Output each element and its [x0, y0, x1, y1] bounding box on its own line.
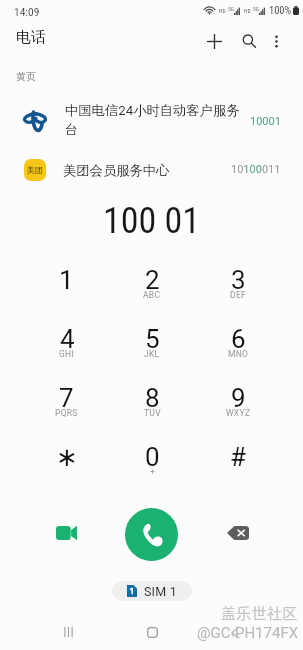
staticText: GHI	[59, 349, 75, 359]
staticText: 3	[231, 265, 246, 295]
staticText: 美团会员服务中心	[63, 162, 303, 179]
staticText: 黄页	[16, 70, 36, 83]
staticText: 100%	[269, 4, 292, 16]
staticText: DEF	[230, 290, 247, 300]
button[interactable]: Back	[219, 619, 251, 645]
staticText: JKL	[144, 349, 160, 359]
staticText: 盖乐世社区	[221, 602, 298, 624]
button[interactable]: 2	[109, 265, 195, 324]
staticText: 美团	[27, 165, 43, 175]
button[interactable]: 5	[109, 324, 195, 383]
staticText: TUV	[144, 408, 161, 418]
button[interactable]: 美团	[0, 155, 303, 185]
button[interactable]: 9	[195, 383, 281, 442]
staticText: ∗	[56, 442, 78, 472]
button[interactable]: Recents	[52, 619, 84, 645]
button[interactable]: More options	[263, 28, 289, 54]
button[interactable]: 1	[24, 265, 109, 324]
staticText: 5G	[228, 6, 234, 12]
staticText: HD	[219, 8, 226, 14]
button[interactable]: #	[195, 442, 281, 501]
staticText: 9	[231, 383, 246, 413]
staticText: WXYZ	[226, 408, 251, 418]
staticText: @GC‹PH174FX	[197, 624, 299, 642]
staticText: +	[150, 467, 156, 477]
staticText: HD	[244, 8, 251, 14]
staticText: 10001	[250, 115, 281, 128]
button[interactable]: Video call	[40, 508, 92, 558]
staticText: 2	[145, 265, 160, 295]
staticText: ABC	[143, 290, 161, 300]
button[interactable]: Add contact	[201, 28, 227, 54]
button[interactable]: 4	[24, 324, 109, 383]
staticText: #	[230, 442, 247, 472]
staticText: 5G	[253, 6, 259, 12]
button[interactable]: Backspace	[212, 508, 264, 558]
staticText: 14:09	[14, 5, 40, 18]
staticText: 0	[145, 442, 160, 472]
staticText: 1	[59, 265, 74, 295]
button[interactable]: Home	[136, 619, 168, 645]
staticText: 6	[231, 324, 246, 354]
button[interactable]: 6	[195, 324, 281, 383]
staticText: SIM 1	[144, 584, 177, 599]
button[interactable]: 3	[195, 265, 281, 324]
button[interactable]: 中国电信24小时自动客户服务台	[0, 98, 303, 142]
button[interactable]: 7	[24, 383, 109, 442]
staticText: 电话	[16, 28, 46, 47]
staticText: 100 01	[103, 200, 201, 242]
staticText: MNO	[228, 349, 249, 359]
button[interactable]: SIM 1	[112, 581, 192, 601]
staticText: 7	[59, 383, 74, 413]
staticText: 8	[145, 383, 160, 413]
staticText: 10100011	[231, 163, 281, 176]
button[interactable]: Search	[236, 28, 262, 54]
button[interactable]: 8	[109, 383, 195, 442]
button[interactable]: 0	[109, 442, 195, 501]
button[interactable]: ∗	[24, 442, 109, 501]
staticText: 5	[145, 324, 160, 354]
staticText: 4	[60, 324, 75, 354]
staticText: 中国电信24小时自动客户服务台	[65, 102, 247, 138]
button[interactable]: Call	[125, 508, 178, 561]
staticText: PQRS	[55, 408, 78, 418]
